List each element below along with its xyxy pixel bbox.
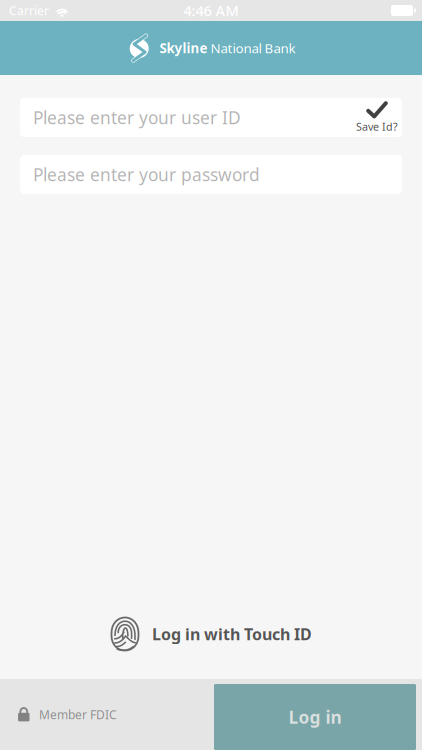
button[interactable]: Log in with Touch ID [110,611,312,657]
button[interactable]: Save Id? [355,98,399,137]
staticText: National Bank [207,39,295,57]
staticText: Log in with Touch ID [152,623,312,645]
staticText: 4:46 AM [183,1,238,20]
staticText: Log in [288,705,341,728]
staticText: Save Id? [356,119,398,134]
staticText: Please enter your user ID [33,106,241,129]
button[interactable]: Log in [214,684,416,750]
staticText: Member FDIC [39,706,117,722]
staticText: Carrier [9,2,49,18]
staticText: Please enter your password [33,163,260,186]
staticText: Skyline [159,39,207,57]
